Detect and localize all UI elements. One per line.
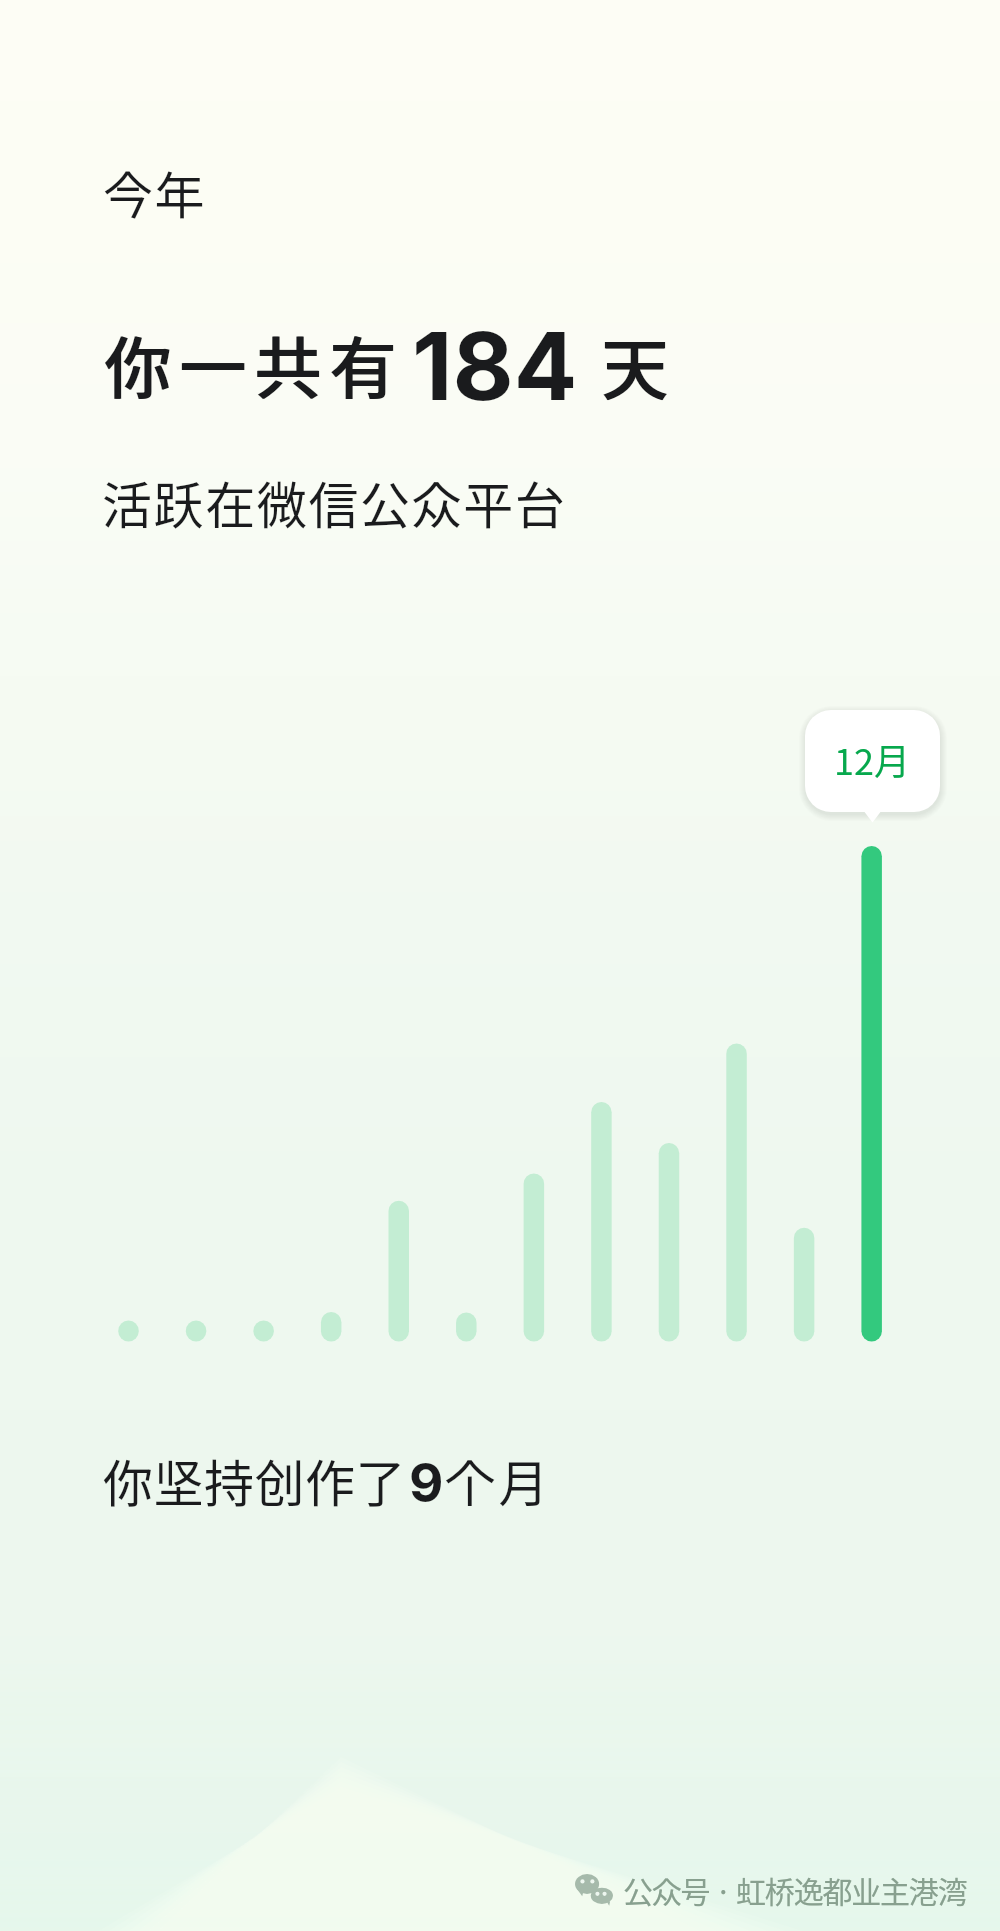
staticText: 天 [601,316,668,413]
button[interactable]: December, peak month [805,710,940,812]
staticText: 9 [409,1451,444,1515]
staticText: 活跃在微信公众平台 [102,466,567,538]
staticText: 你坚持创作了 [103,1444,406,1516]
staticText: 天 [602,316,669,413]
staticText: 184 [412,309,578,423]
staticText: 今年 [103,156,206,228]
staticText: 你一共有 [104,315,404,412]
staticText: 公众号 · 虹桥逸都业主港湾 [623,1868,967,1911]
staticText: 个月 [445,1444,552,1516]
button[interactable]: WeChat official account [575,1868,957,1911]
staticText: 你一共有 [105,315,405,412]
staticText: 12月 [834,733,910,785]
